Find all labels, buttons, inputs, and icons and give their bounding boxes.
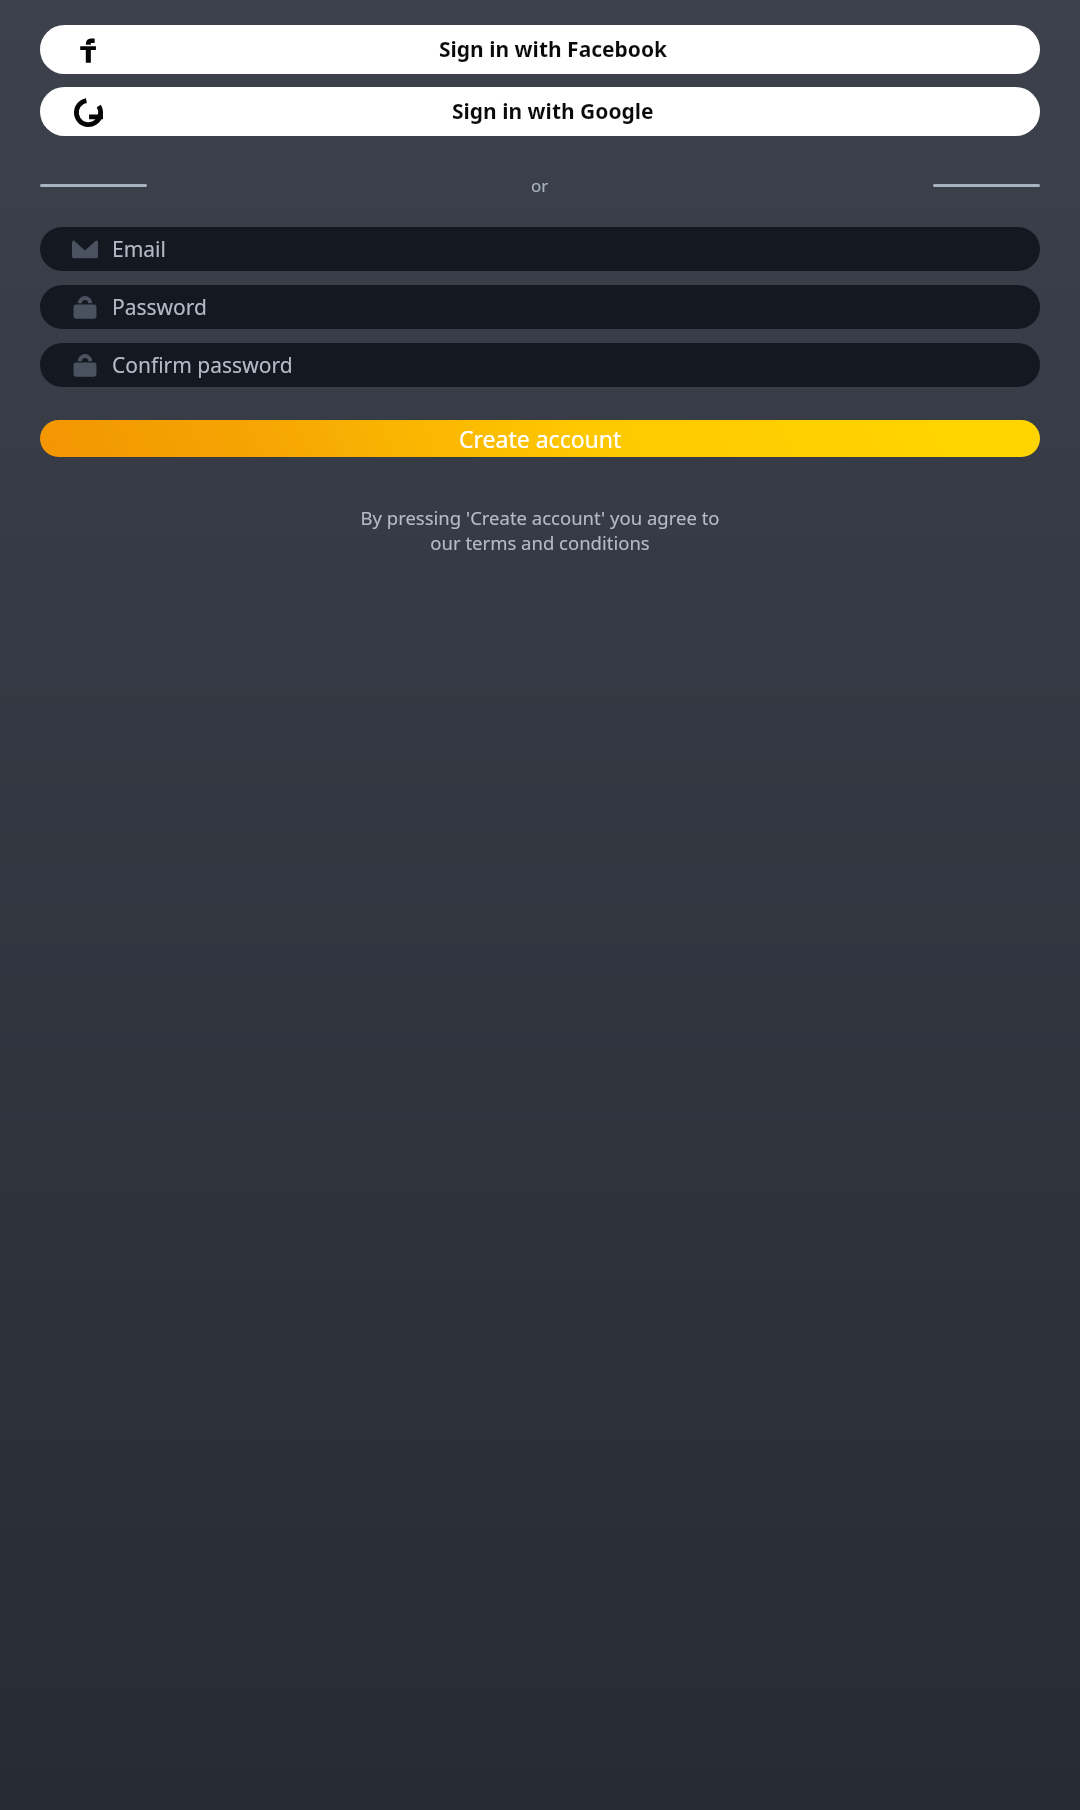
- other: Email: [72, 236, 98, 262]
- staticText: Create account: [459, 423, 622, 454]
- button[interactable]: Password: [40, 343, 1040, 387]
- other: Google: [74, 98, 103, 127]
- button[interactable]: Facebook: [40, 25, 1040, 74]
- staticText: Sign in with Facebook: [439, 35, 668, 64]
- other: Facebook: [75, 37, 101, 63]
- other: Password: [72, 294, 98, 320]
- staticText: or: [531, 174, 549, 197]
- other: Password: [72, 352, 98, 378]
- staticText: By pressing 'Create account' you agree t…: [34, 505, 1046, 556]
- button[interactable]: Email: [40, 227, 1040, 271]
- button[interactable]: Create account: [40, 420, 1040, 457]
- staticText: Sign in with Google: [452, 97, 654, 126]
- staticText: Confirm password: [112, 351, 293, 380]
- button[interactable]: Password: [40, 285, 1040, 329]
- staticText: Email: [112, 235, 166, 264]
- button[interactable]: Google: [40, 87, 1040, 136]
- staticText: Password: [112, 293, 207, 322]
